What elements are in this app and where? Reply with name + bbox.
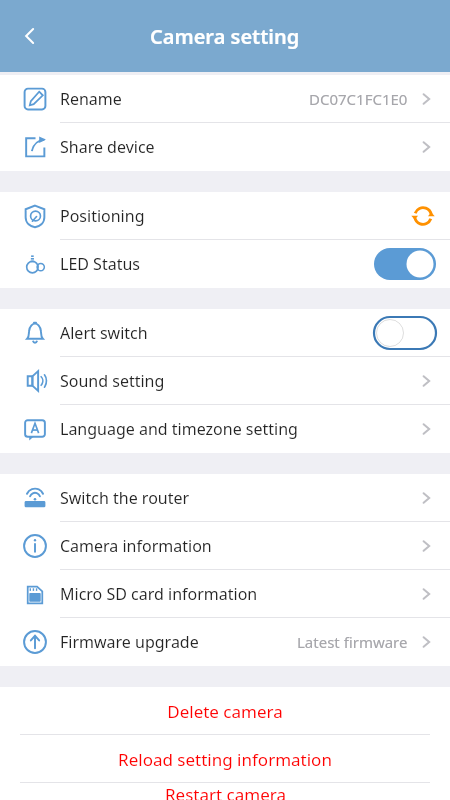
staticText: Delete camera bbox=[167, 700, 283, 723]
staticText: Language and timezone setting bbox=[60, 418, 298, 440]
button[interactable]: Rename bbox=[0, 75, 450, 123]
button[interactable]: Firmware upgrade bbox=[0, 618, 450, 666]
button[interactable]: Reload setting information bbox=[0, 735, 450, 783]
button[interactable]: Language and timezone setting bbox=[0, 405, 450, 453]
staticText: LED Status bbox=[60, 253, 140, 275]
button[interactable]: LED Status bbox=[0, 240, 450, 288]
staticText: DC07C1FC1E0 bbox=[309, 89, 408, 109]
button[interactable]: Back bbox=[6, 12, 54, 60]
staticText: Positioning bbox=[60, 205, 145, 227]
staticText: Alert switch bbox=[60, 322, 148, 344]
button[interactable]: Micro SD card information bbox=[0, 570, 450, 618]
staticText: Share device bbox=[60, 136, 155, 158]
staticText: Firmware upgrade bbox=[60, 631, 199, 653]
staticText: Switch the router bbox=[60, 487, 190, 509]
button[interactable]: Restart camera bbox=[0, 783, 450, 800]
staticText: Rename bbox=[60, 88, 122, 110]
staticText: Restart camera bbox=[165, 783, 286, 800]
button[interactable]: Alert switch bbox=[0, 309, 450, 357]
button[interactable]: Camera information bbox=[0, 522, 450, 570]
staticText: Micro SD card information bbox=[60, 583, 258, 605]
staticText: Sound setting bbox=[60, 370, 165, 392]
staticText: Camera setting bbox=[150, 23, 300, 50]
button[interactable]: Positioning bbox=[0, 192, 450, 240]
button[interactable]: Sound setting bbox=[0, 357, 450, 405]
staticText: Camera information bbox=[60, 535, 212, 557]
button[interactable]: Share device bbox=[0, 123, 450, 171]
button[interactable]: Switch the router bbox=[0, 474, 450, 522]
button[interactable]: Delete camera bbox=[0, 687, 450, 735]
staticText: Reload setting information bbox=[118, 748, 332, 771]
staticText: Latest firmware bbox=[297, 632, 408, 652]
